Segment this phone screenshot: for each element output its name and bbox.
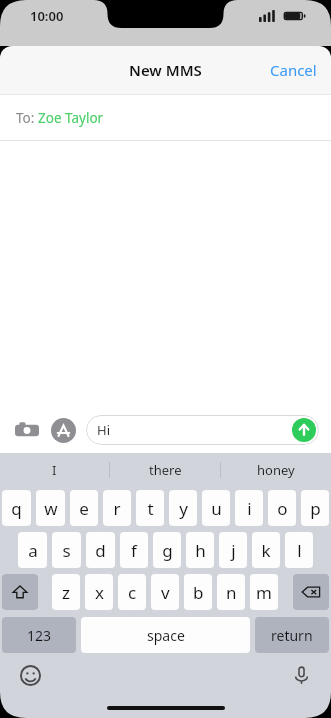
- staticText: u: [211, 497, 222, 520]
- staticText: n: [226, 581, 237, 604]
- button[interactable]: o: [268, 490, 296, 526]
- staticText: l: [297, 539, 302, 562]
- staticText: space: [147, 626, 185, 645]
- staticText: To:: [16, 109, 38, 127]
- button[interactable]: Hi: [86, 415, 319, 445]
- button[interactable]: Dictation: [287, 661, 315, 689]
- staticText: Cancel: [270, 60, 317, 80]
- staticText: I: [52, 461, 57, 479]
- button[interactable]: w: [36, 490, 65, 526]
- button[interactable]: k: [252, 532, 280, 568]
- staticText: q: [11, 497, 22, 520]
- button[interactable]: f: [120, 532, 148, 568]
- staticText: c: [128, 581, 137, 604]
- button[interactable]: d: [86, 532, 115, 568]
- button[interactable]: I: [0, 453, 109, 487]
- button[interactable]: z: [52, 574, 80, 610]
- staticText: k: [261, 539, 271, 562]
- button[interactable]: r: [103, 490, 131, 526]
- button[interactable]: a: [18, 532, 47, 568]
- button[interactable]: Backspace: [293, 574, 329, 610]
- staticText: b: [193, 581, 204, 604]
- staticText: d: [95, 539, 106, 562]
- staticText: g: [162, 539, 173, 562]
- button[interactable]: e: [70, 490, 98, 526]
- staticText: a: [28, 539, 38, 562]
- button[interactable]: p: [301, 490, 329, 526]
- staticText: 10:00: [30, 7, 64, 25]
- staticText: j: [231, 539, 236, 562]
- button[interactable]: Cancel: [256, 52, 331, 88]
- button[interactable]: return: [255, 617, 329, 653]
- staticText: s: [62, 539, 71, 562]
- button[interactable]: i: [235, 490, 263, 526]
- button[interactable]: s: [52, 532, 81, 568]
- button[interactable]: App Store: [48, 415, 78, 445]
- button[interactable]: space: [81, 617, 250, 653]
- staticText: v: [161, 581, 170, 604]
- button[interactable]: j: [219, 532, 247, 568]
- staticText: return: [271, 626, 313, 645]
- staticText: i: [247, 497, 252, 520]
- staticText: h: [195, 539, 206, 562]
- staticText: f: [131, 539, 137, 562]
- button[interactable]: x: [85, 574, 113, 610]
- button[interactable]: v: [151, 574, 179, 610]
- button[interactable]: Emoji: [16, 661, 44, 689]
- button[interactable]: there: [110, 453, 220, 487]
- staticText: New MMS: [129, 60, 202, 80]
- staticText: r: [113, 497, 121, 520]
- staticText: x: [95, 581, 104, 604]
- button[interactable]: t: [136, 490, 164, 526]
- button[interactable]: honey: [221, 453, 331, 487]
- button[interactable]: h: [186, 532, 214, 568]
- staticText: m: [256, 581, 272, 604]
- button[interactable]: q: [2, 490, 31, 526]
- button[interactable]: Send: [291, 417, 317, 443]
- staticText: Hi: [97, 421, 110, 439]
- staticText: Zoe Taylor: [38, 109, 104, 127]
- staticText: honey: [257, 461, 295, 479]
- button[interactable]: c: [118, 574, 146, 610]
- button[interactable]: To:: [0, 95, 331, 140]
- button[interactable]: u: [202, 490, 230, 526]
- button[interactable]: g: [153, 532, 181, 568]
- button[interactable]: n: [217, 574, 245, 610]
- staticText: e: [79, 497, 89, 520]
- button[interactable]: Shift: [2, 574, 38, 610]
- button[interactable]: Camera: [12, 415, 42, 445]
- button[interactable]: 123: [2, 617, 76, 653]
- staticText: w: [44, 497, 58, 520]
- button[interactable]: m: [250, 574, 278, 610]
- staticText: p: [310, 497, 321, 520]
- staticText: there: [149, 461, 182, 479]
- staticText: 123: [27, 626, 52, 645]
- staticText: y: [179, 497, 188, 520]
- staticText: z: [62, 581, 70, 604]
- button[interactable]: y: [169, 490, 197, 526]
- staticText: o: [277, 497, 288, 520]
- button[interactable]: l: [285, 532, 313, 568]
- staticText: t: [147, 497, 154, 520]
- button[interactable]: b: [184, 574, 212, 610]
